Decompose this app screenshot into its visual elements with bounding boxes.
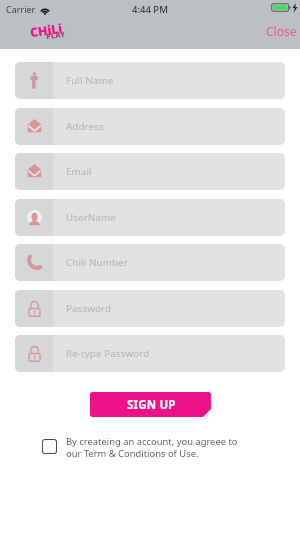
staticText: PLAY <box>45 29 67 41</box>
staticText: 4:44 PM <box>132 3 168 16</box>
staticText: Email <box>66 165 92 178</box>
button[interactable]: UserName <box>15 199 285 236</box>
button[interactable]: Chili Number <box>15 244 285 281</box>
button[interactable]: Email <box>15 153 285 190</box>
staticText: SIGN UP <box>127 397 176 413</box>
staticText: By createing an account, you agreee to o… <box>66 435 242 460</box>
button[interactable]: Re-type Password <box>15 335 285 372</box>
staticText: UserName <box>66 211 116 224</box>
button[interactable]: Full Name <box>15 62 285 99</box>
staticText: Full Name <box>66 74 114 87</box>
staticText: CHiLi <box>29 20 64 41</box>
staticText: Close <box>266 23 297 39</box>
staticText: Re-type Password <box>66 347 150 360</box>
button[interactable]: Close <box>259 21 300 41</box>
staticText: Password <box>66 302 112 315</box>
button[interactable]: By createing an account, you agreee to o… <box>42 433 242 458</box>
button[interactable]: SIGN UP <box>90 392 211 417</box>
button[interactable]: Address <box>15 108 285 145</box>
staticText: Carrier <box>6 3 36 15</box>
staticText: Chili Number <box>66 256 128 269</box>
button[interactable]: Password <box>15 290 285 327</box>
staticText: Address <box>66 120 104 133</box>
